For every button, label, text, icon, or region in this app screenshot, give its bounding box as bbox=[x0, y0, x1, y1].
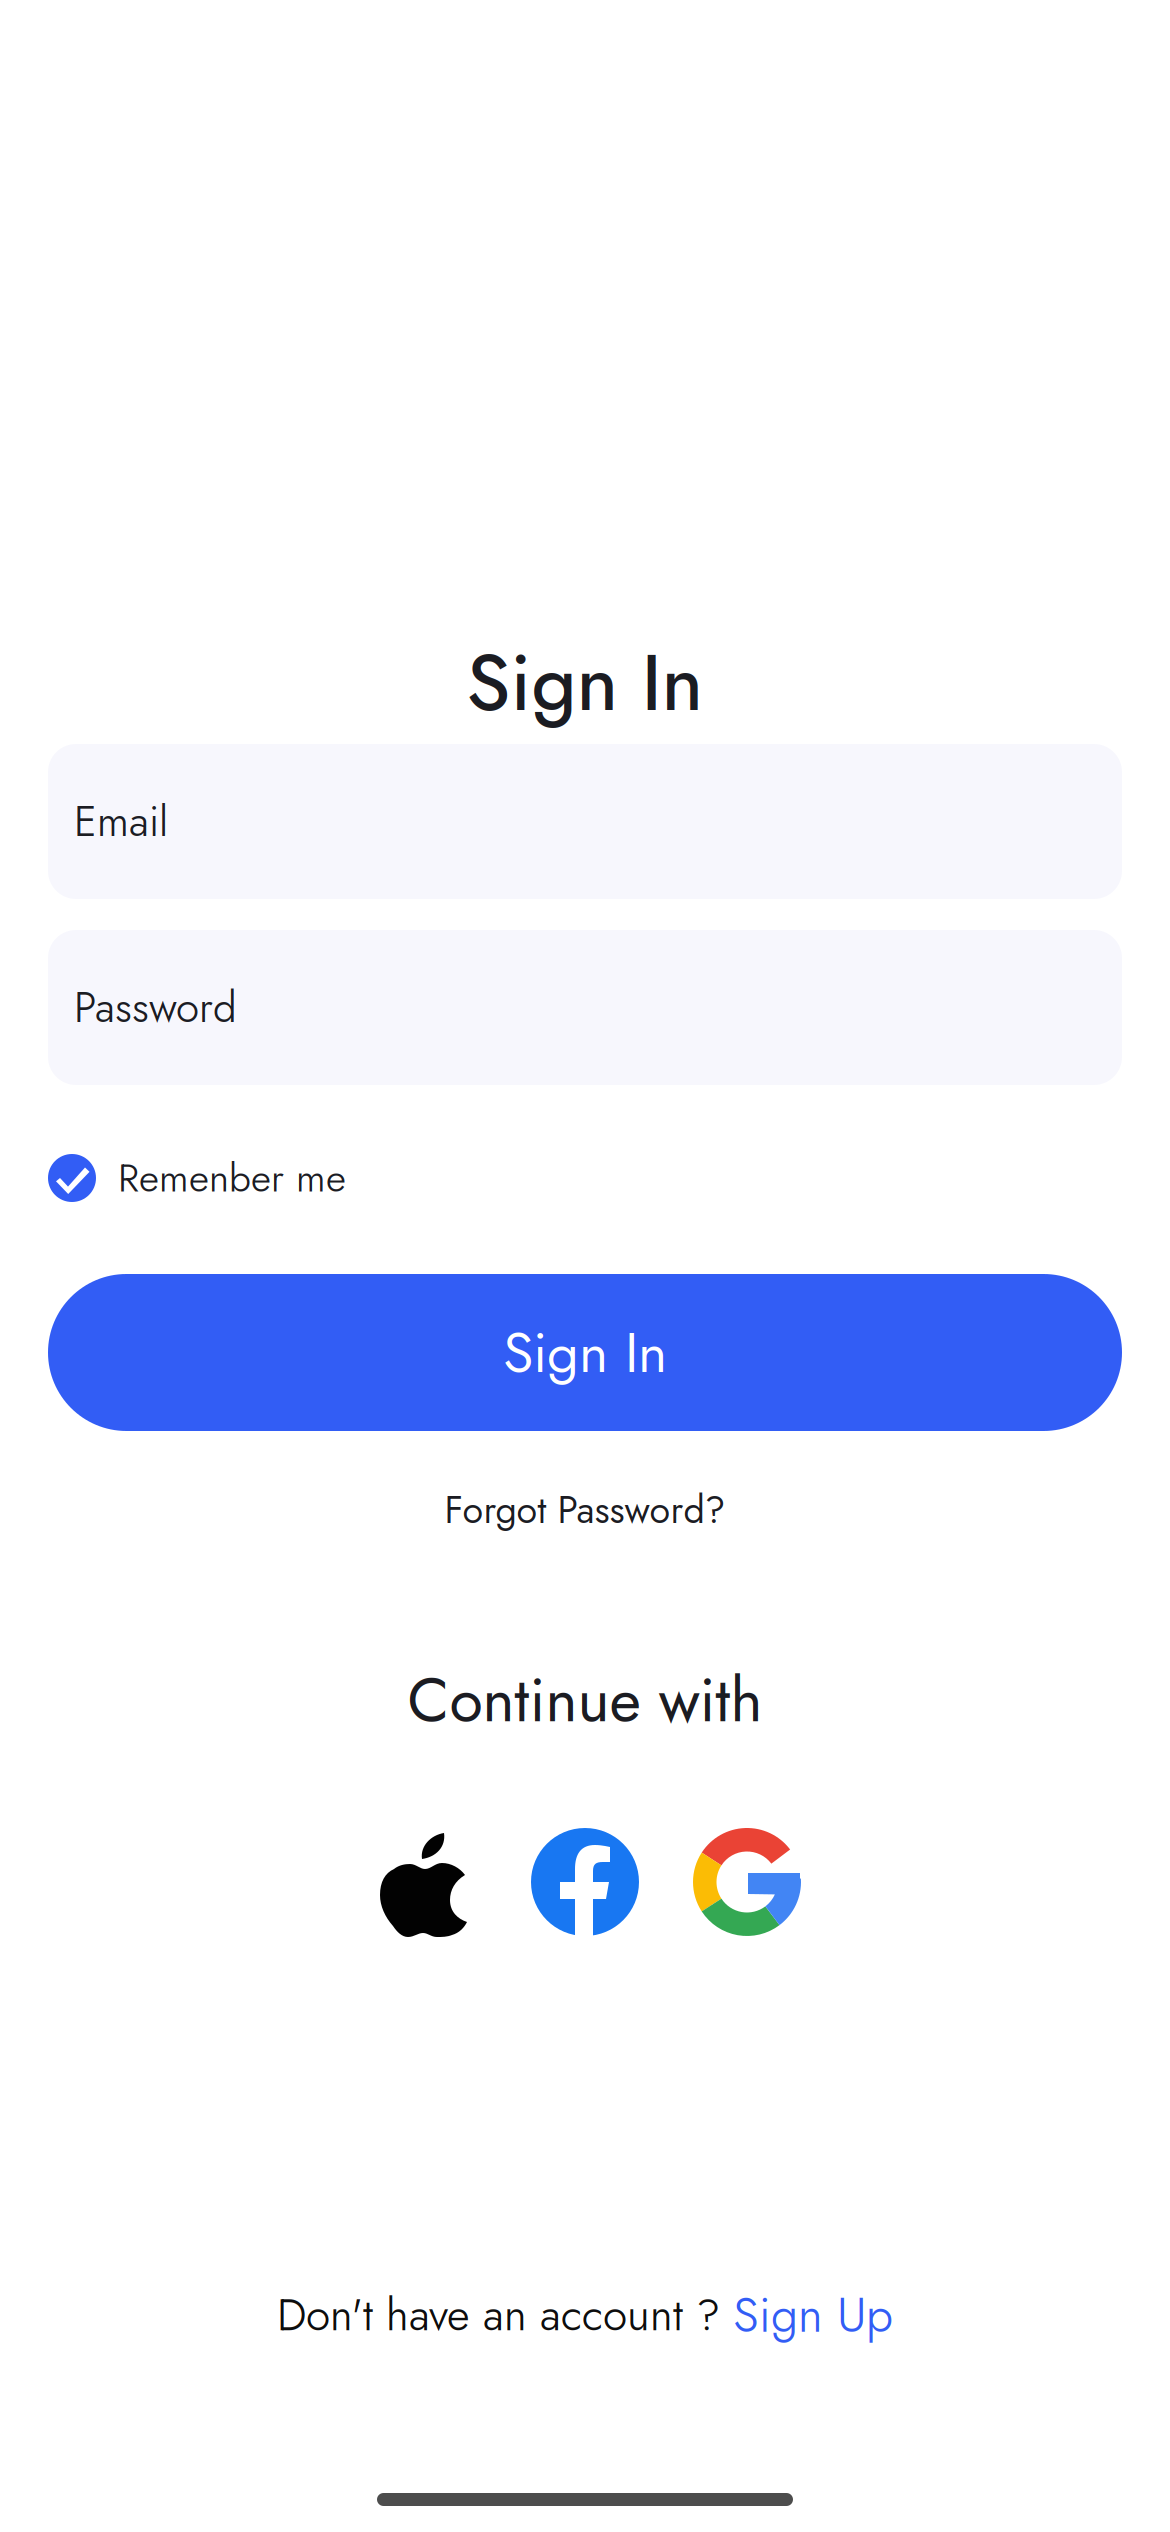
staticText: Remenber me bbox=[118, 1150, 346, 1206]
button[interactable]: Sign Up bbox=[733, 2280, 893, 2350]
staticText: Sign In bbox=[503, 1312, 667, 1393]
staticText: Don't have an account ? bbox=[277, 2283, 733, 2347]
staticText: Email bbox=[74, 791, 168, 852]
button[interactable]: Remenber me bbox=[48, 1154, 1122, 1202]
button[interactable]: Continue with Google bbox=[693, 1828, 801, 1936]
staticText: Sign In bbox=[466, 627, 703, 739]
button[interactable]: Forgot Password? bbox=[444, 1490, 725, 1530]
button[interactable]: Continue with Apple bbox=[379, 1827, 467, 1937]
button[interactable]: Continue with Facebook bbox=[531, 1828, 639, 1936]
button[interactable]: Password bbox=[48, 930, 1122, 1085]
button[interactable]: Email bbox=[48, 744, 1122, 899]
staticText: Sign Up bbox=[733, 2280, 893, 2350]
staticText: Forgot Password? bbox=[444, 1483, 725, 1537]
button[interactable]: Sign In bbox=[48, 1274, 1122, 1431]
staticText: Continue with bbox=[407, 1656, 762, 1744]
staticText: Password bbox=[74, 977, 237, 1038]
